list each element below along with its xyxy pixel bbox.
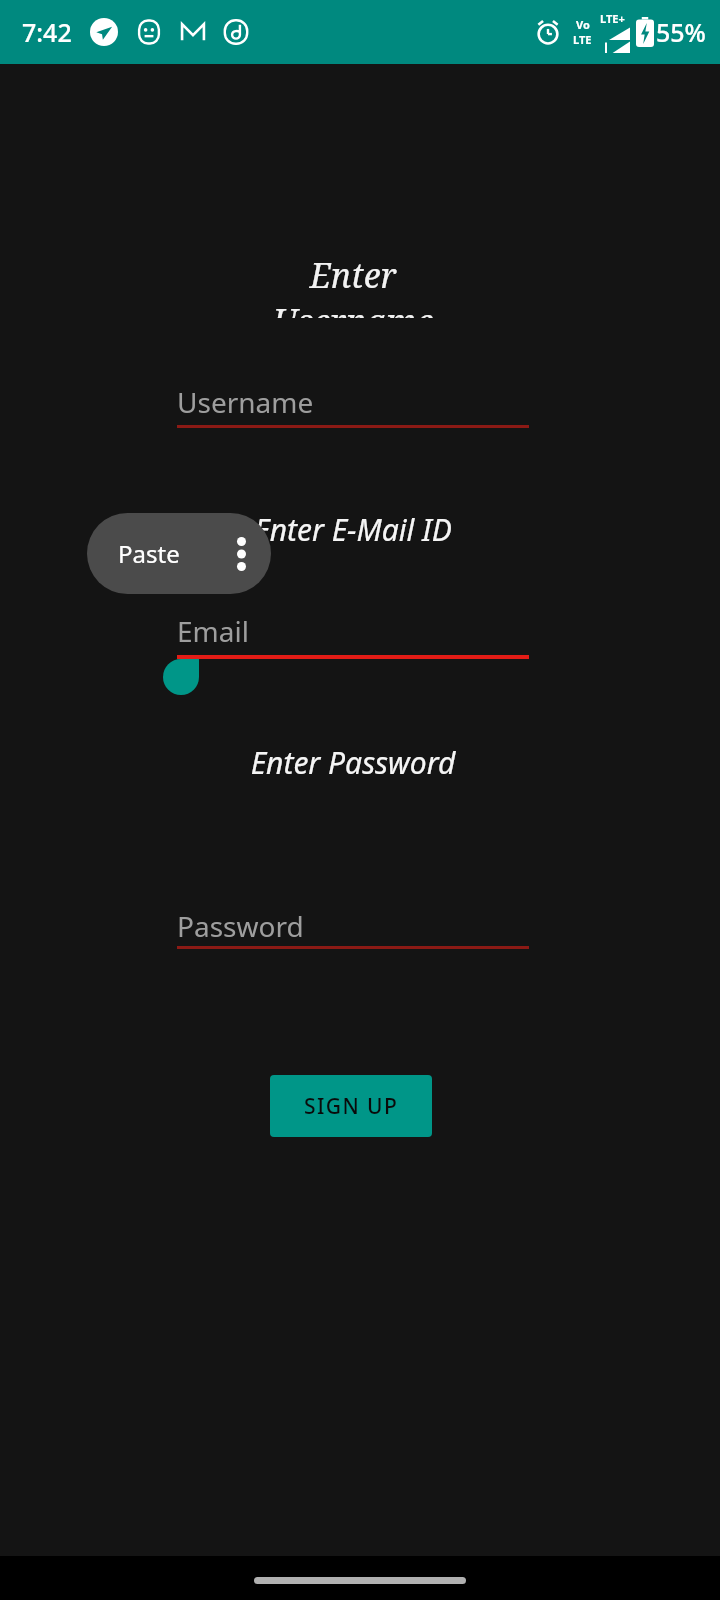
button[interactable]: Paste	[87, 513, 211, 594]
staticText: Enter Username	[177, 252, 529, 318]
button[interactable]: Username	[177, 383, 529, 428]
staticText: LTE	[573, 32, 592, 47]
button[interactable]: Password	[177, 907, 529, 949]
staticText: Paste	[118, 537, 180, 570]
staticText: LTE+	[600, 11, 625, 26]
staticText: 55%	[656, 15, 706, 49]
other: Selection handle	[163, 651, 199, 695]
button[interactable]: SIGN UP	[270, 1075, 432, 1137]
staticText: Enter E-Mail ID	[177, 509, 529, 550]
staticText: Username	[177, 383, 314, 421]
button[interactable]: Email	[177, 612, 529, 659]
staticText: Password	[177, 907, 304, 945]
staticText: Enter Password	[177, 742, 529, 783]
staticText: Vo	[576, 17, 590, 32]
staticText: Email	[177, 612, 249, 650]
staticText: 7:42	[22, 15, 72, 49]
button[interactable]: More options	[211, 513, 271, 594]
staticText: SIGN UP	[304, 1092, 399, 1121]
